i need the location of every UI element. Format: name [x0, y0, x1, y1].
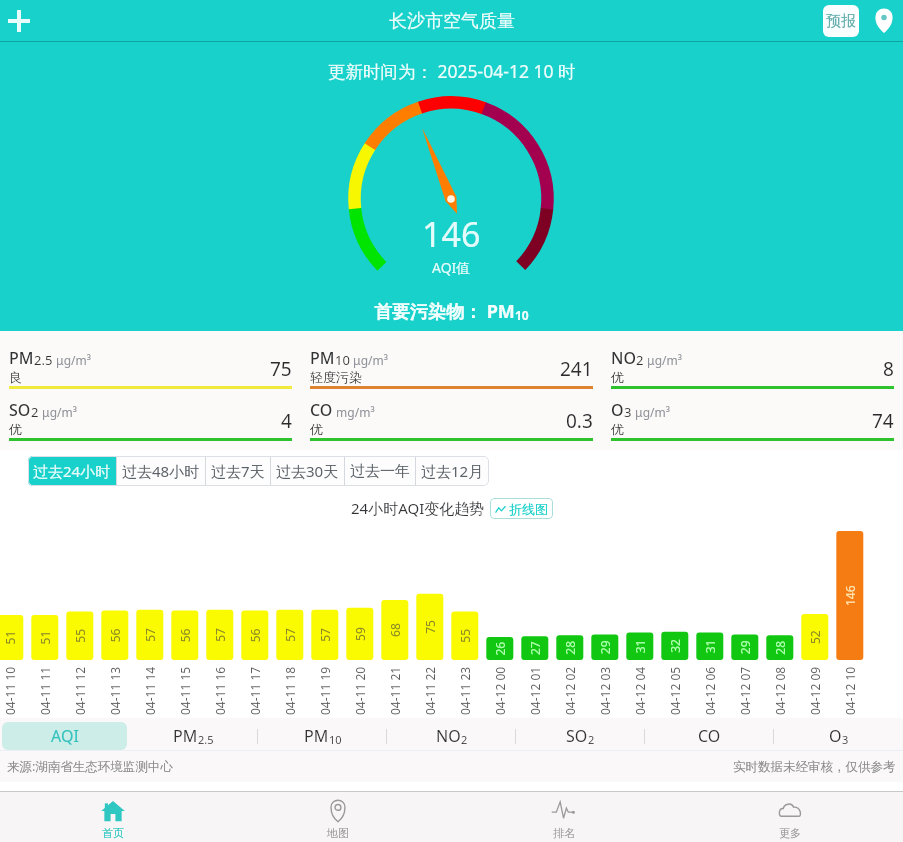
staticText: 3: [842, 732, 849, 747]
staticText: 过去48小时: [122, 461, 200, 481]
staticText: 74: [872, 408, 894, 434]
staticText: O: [829, 725, 842, 747]
button[interactable]: PM: [131, 722, 256, 750]
staticText: 10: [515, 307, 529, 323]
staticText: 2.5: [198, 732, 214, 747]
button[interactable]: Add city: [4, 6, 34, 36]
staticText: 4: [281, 408, 292, 434]
staticText: AQI值: [432, 258, 471, 277]
staticText: 10: [329, 732, 342, 747]
staticText: 2: [31, 403, 39, 421]
staticText: 优: [310, 421, 323, 437]
staticText: 轻度污染: [310, 369, 362, 385]
button[interactable]: 过去48小时: [117, 456, 205, 486]
staticText: CO: [698, 725, 721, 747]
button[interactable]: 过去7天: [206, 456, 270, 486]
staticText: 2: [588, 732, 595, 747]
button[interactable]: 折线图: [490, 498, 553, 519]
staticText: μg/m³: [644, 352, 682, 368]
staticText: 2: [461, 732, 468, 747]
button[interactable]: 预报: [823, 5, 859, 37]
button[interactable]: 首页: [0, 792, 225, 842]
button[interactable]: NO: [389, 722, 514, 750]
staticText: SO: [9, 399, 31, 421]
staticText: 来源:湖南省生态环境监测中心: [7, 758, 173, 775]
button[interactable]: PM: [310, 347, 593, 389]
staticText: μg/m³: [350, 352, 388, 368]
staticText: 8: [883, 356, 894, 382]
staticText: 10: [335, 351, 350, 369]
staticText: 优: [611, 369, 624, 385]
staticText: 过去7天: [211, 461, 265, 481]
staticText: 良: [9, 369, 22, 385]
button[interactable]: 过去30天: [271, 456, 344, 486]
button[interactable]: O: [776, 722, 901, 750]
staticText: μg/m³: [39, 404, 77, 420]
staticText: 更多: [779, 826, 801, 840]
staticText: CO: [310, 399, 333, 421]
staticText: 2: [636, 351, 644, 369]
staticText: 优: [9, 421, 22, 437]
staticText: 146: [422, 211, 481, 257]
staticText: 预报: [826, 12, 856, 31]
button[interactable]: O: [611, 399, 894, 441]
staticText: O: [611, 399, 624, 421]
button[interactable]: 过去一年: [345, 456, 415, 486]
button[interactable]: 过去24小时: [28, 456, 116, 486]
button[interactable]: CO: [310, 399, 593, 441]
staticText: NO: [436, 725, 461, 747]
staticText: 0.3: [566, 408, 593, 434]
button[interactable]: 排名: [451, 792, 677, 842]
staticText: μg/m³: [53, 352, 91, 368]
button[interactable]: 地图: [225, 792, 451, 842]
staticText: μg/m³: [632, 404, 670, 420]
staticText: 长沙市空气质量: [389, 10, 515, 33]
staticText: 过去24小时: [33, 461, 111, 481]
staticText: PM: [173, 725, 198, 747]
staticText: 过去30天: [276, 461, 339, 481]
button[interactable]: AQI: [2, 722, 127, 750]
staticText: 过去一年: [350, 462, 410, 481]
button[interactable]: AQI 24 hour trend chart: [0, 520, 903, 718]
staticText: 首要污染物： PM: [374, 299, 515, 324]
button[interactable]: CO: [647, 722, 772, 750]
staticText: 75: [270, 356, 292, 382]
button[interactable]: 更多: [677, 792, 903, 842]
staticText: PM: [9, 347, 34, 369]
button[interactable]: NO: [611, 347, 894, 389]
staticText: NO: [611, 347, 636, 369]
staticText: PM: [304, 725, 329, 747]
staticText: 3: [624, 403, 632, 421]
staticText: 实时数据未经审核，仅供参考: [733, 759, 896, 775]
button[interactable]: Location: [871, 8, 897, 34]
staticText: AQI: [51, 725, 79, 747]
staticText: SO: [566, 725, 588, 747]
staticText: PM: [310, 347, 335, 369]
button[interactable]: SO: [9, 399, 292, 441]
staticText: mg/m³: [333, 404, 375, 420]
staticText: 优: [611, 421, 624, 437]
staticText: 地图: [327, 826, 349, 840]
staticText: 折线图: [509, 501, 548, 517]
staticText: 更新时间为： 2025-04-12 10 时: [328, 59, 576, 83]
button[interactable]: 过去12月: [416, 456, 489, 486]
staticText: 首页: [102, 826, 124, 840]
staticText: 过去12月: [421, 461, 484, 481]
button[interactable]: SO: [518, 722, 643, 750]
staticText: 24小时AQI变化趋势: [351, 498, 485, 518]
button[interactable]: PM: [260, 722, 385, 750]
staticText: 2.5: [34, 351, 53, 369]
staticText: 排名: [553, 826, 575, 840]
staticText: 241: [560, 356, 593, 382]
button[interactable]: PM: [9, 347, 292, 389]
